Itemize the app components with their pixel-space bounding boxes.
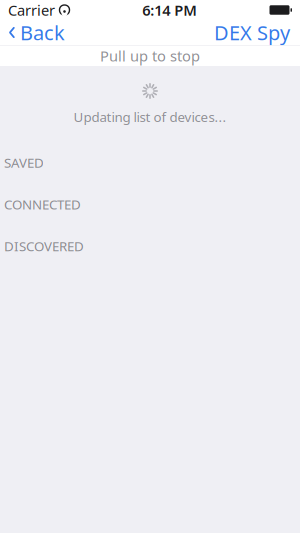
- staticText: DEX Spy: [214, 19, 290, 46]
- staticText: Carrier: [8, 0, 55, 20]
- staticText: 6:14 PM: [142, 0, 197, 20]
- button[interactable]: DEX Spy: [214, 15, 300, 50]
- staticText: CONNECTED: [4, 195, 81, 213]
- staticText: Back: [20, 19, 65, 46]
- staticText: DISCOVERED: [4, 237, 84, 255]
- staticText: Updating list of devices...: [73, 108, 226, 126]
- button[interactable]: Back: [0, 15, 65, 50]
- staticText: SAVED: [4, 154, 44, 171]
- staticText: Pull up to stop: [100, 46, 200, 65]
